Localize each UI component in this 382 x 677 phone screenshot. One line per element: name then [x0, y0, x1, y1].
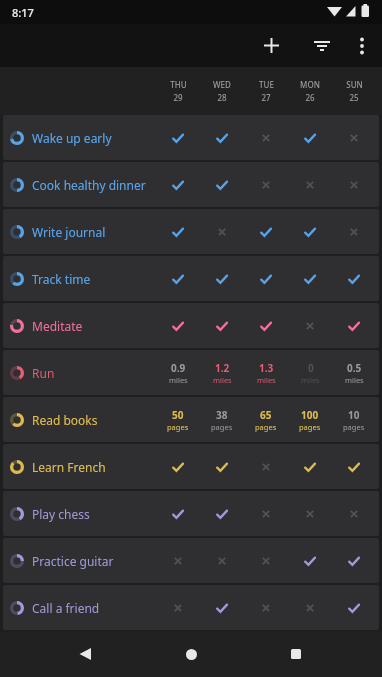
button[interactable]	[244, 491, 288, 536]
staticText: 50	[172, 408, 184, 422]
button[interactable]	[244, 538, 288, 583]
button[interactable]	[276, 634, 316, 674]
button[interactable]: 38	[200, 397, 244, 442]
button[interactable]	[244, 444, 288, 489]
button[interactable]	[156, 444, 200, 489]
button[interactable]	[244, 585, 288, 630]
button[interactable]	[156, 491, 200, 536]
button[interactable]	[332, 585, 376, 630]
button[interactable]	[288, 256, 332, 301]
button[interactable]	[332, 444, 376, 489]
staticText: 27	[261, 92, 271, 103]
button[interactable]: Play chess	[3, 491, 379, 536]
button[interactable]	[156, 162, 200, 207]
staticText: miles	[301, 375, 320, 385]
button[interactable]	[200, 303, 244, 348]
staticText: 1.2	[215, 361, 230, 375]
button[interactable]	[200, 115, 244, 160]
button[interactable]	[332, 491, 376, 536]
button[interactable]	[342, 26, 381, 65]
button[interactable]	[171, 634, 211, 674]
button[interactable]	[200, 538, 244, 583]
button[interactable]	[252, 26, 291, 65]
button[interactable]	[288, 115, 332, 160]
button[interactable]: 0.9	[156, 350, 200, 395]
button[interactable]	[200, 491, 244, 536]
staticText: miles	[169, 375, 188, 385]
button[interactable]: 100	[288, 397, 332, 442]
staticText: Call a friend	[32, 600, 100, 616]
button[interactable]: 65	[244, 397, 288, 442]
button[interactable]	[156, 256, 200, 301]
button[interactable]: Meditate	[3, 303, 379, 348]
button[interactable]	[288, 162, 332, 207]
staticText: pages	[343, 422, 365, 432]
button[interactable]	[288, 209, 332, 254]
staticText: Play chess	[32, 506, 90, 522]
button[interactable]	[65, 634, 105, 674]
staticText: 100	[301, 408, 319, 422]
button[interactable]: Read books	[3, 397, 379, 442]
button[interactable]: 0.5	[332, 350, 376, 395]
staticText: 10	[348, 408, 360, 422]
staticText: Cook healthy dinner	[32, 177, 146, 193]
button[interactable]	[156, 209, 200, 254]
staticText: SUN	[346, 79, 363, 90]
button[interactable]: 50	[156, 397, 200, 442]
button[interactable]: 10	[332, 397, 376, 442]
button[interactable]: 1.3	[244, 350, 288, 395]
button[interactable]: Write journal	[3, 209, 379, 254]
button[interactable]: Call a friend	[3, 585, 379, 630]
button[interactable]	[156, 538, 200, 583]
button[interactable]	[200, 444, 244, 489]
staticText: pages	[211, 422, 233, 432]
button[interactable]: Track time	[3, 256, 379, 301]
staticText: 1.3	[259, 361, 274, 375]
button[interactable]	[244, 209, 288, 254]
button[interactable]: Cook healthy dinner	[3, 162, 379, 207]
button[interactable]: Run	[3, 350, 379, 395]
button[interactable]: Wake up early	[3, 115, 379, 160]
staticText: miles	[213, 375, 232, 385]
button[interactable]: 1.2	[200, 350, 244, 395]
button[interactable]	[156, 303, 200, 348]
button[interactable]	[288, 585, 332, 630]
button[interactable]: Learn French	[3, 444, 379, 489]
button[interactable]	[200, 162, 244, 207]
button[interactable]	[244, 162, 288, 207]
button[interactable]	[332, 538, 376, 583]
button[interactable]	[288, 444, 332, 489]
button[interactable]	[332, 303, 376, 348]
button[interactable]	[200, 209, 244, 254]
button[interactable]	[200, 585, 244, 630]
staticText: MON	[300, 79, 320, 90]
staticText: Run	[32, 365, 55, 381]
button[interactable]	[332, 209, 376, 254]
staticText: Learn French	[32, 459, 106, 475]
staticText: miles	[257, 375, 276, 385]
button[interactable]	[288, 538, 332, 583]
staticText: 28	[217, 92, 227, 103]
staticText: 26	[305, 92, 315, 103]
staticText: Practice guitar	[32, 553, 114, 569]
button[interactable]	[332, 162, 376, 207]
button[interactable]	[288, 303, 332, 348]
button[interactable]	[332, 256, 376, 301]
staticText: pages	[167, 422, 189, 432]
button[interactable]	[288, 491, 332, 536]
button[interactable]	[156, 115, 200, 160]
staticText: pages	[255, 422, 277, 432]
button[interactable]	[302, 26, 341, 65]
staticText: 38	[216, 408, 228, 422]
button[interactable]	[244, 256, 288, 301]
staticText: 0.5	[347, 361, 362, 375]
button[interactable]	[332, 115, 376, 160]
staticText: 0	[308, 361, 314, 375]
button[interactable]	[244, 303, 288, 348]
button[interactable]	[156, 585, 200, 630]
button[interactable]	[244, 115, 288, 160]
staticText: 0.9	[171, 361, 186, 375]
button[interactable]	[200, 256, 244, 301]
button[interactable]: 0	[288, 350, 332, 395]
button[interactable]: Practice guitar	[3, 538, 379, 583]
